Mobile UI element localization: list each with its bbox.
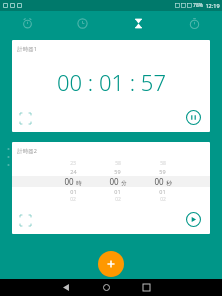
button[interactable]: Pause [185, 109, 202, 126]
staticText: 58 [115, 160, 121, 167]
button[interactable]: 23 [54, 160, 92, 203]
staticText: 23 [70, 160, 76, 167]
staticText: 02 [160, 196, 166, 203]
button[interactable]: 計時器2 [12, 142, 210, 234]
staticText: 58 [160, 160, 166, 167]
staticText: 00 [64, 176, 74, 187]
button[interactable]: Expand [20, 215, 31, 226]
button[interactable]: Alarm [0, 11, 55, 36]
staticText: 59 [114, 168, 121, 175]
staticText: 78% [193, 2, 203, 9]
staticText: 24 [70, 168, 77, 175]
staticText: 02 [70, 196, 76, 203]
button[interactable]: 58 [143, 160, 182, 203]
staticText: 計時器1 [17, 45, 37, 53]
staticText: 59 [159, 168, 166, 175]
button[interactable]: Home [95, 279, 117, 296]
staticText: 秒 [166, 180, 172, 187]
staticText: 計時器2 [17, 147, 37, 155]
staticText: 02 [115, 196, 121, 203]
button[interactable]: Timer [110, 11, 166, 36]
staticText: 01 [114, 188, 121, 195]
staticText: 01 [159, 188, 166, 195]
staticText: 00 [154, 176, 164, 187]
staticText: 時 [76, 180, 82, 187]
staticText: 01 [70, 188, 77, 195]
staticText: 00 : 01 : 57 [57, 67, 166, 97]
button[interactable]: Expand [20, 113, 31, 124]
staticText: 12:19 [205, 2, 220, 9]
button[interactable]: Recents [135, 279, 157, 296]
staticText: 分 [121, 180, 127, 187]
button[interactable]: Add timer [98, 251, 124, 277]
button[interactable]: Clock [55, 11, 110, 36]
button[interactable]: Stopwatch [166, 11, 222, 36]
button[interactable]: Start [185, 211, 202, 228]
staticText: 00 [109, 176, 119, 187]
button[interactable]: 58 [98, 160, 137, 203]
button[interactable]: Back [55, 279, 77, 296]
button[interactable]: 計時器1 [12, 40, 210, 132]
